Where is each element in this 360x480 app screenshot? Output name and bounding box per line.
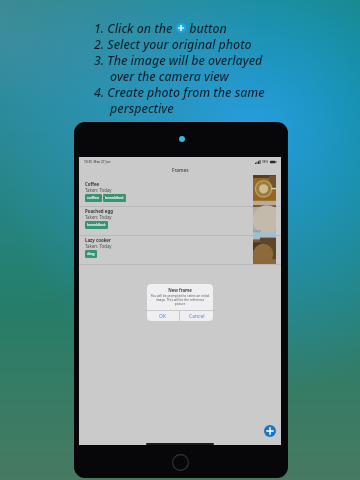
button[interactable]: Lazy cooker: [79, 236, 281, 264]
button[interactable]: OK: [147, 311, 179, 321]
staticText: Lazy cooker: [85, 237, 111, 243]
staticText: coffee: [87, 195, 100, 201]
staticText: breakfast: [105, 195, 124, 201]
staticText: Taken: Today: [85, 187, 112, 193]
staticText: New frame: [147, 287, 213, 293]
staticText: You will be prompted to select an initia…: [147, 294, 213, 306]
button[interactable]: Cancel: [180, 311, 213, 321]
staticText: 4. Create photo from the same: [94, 84, 265, 100]
staticText: button: [186, 20, 227, 36]
button[interactable]: breakfast: [85, 221, 108, 229]
button[interactable]: coffee: [85, 194, 102, 202]
staticText: perspective: [94, 100, 174, 116]
button[interactable]: Poached egg: [79, 207, 281, 235]
staticText: Taken: Today: [85, 243, 112, 249]
staticText: Cancel: [189, 313, 205, 320]
button[interactable]: Coffee: [79, 180, 281, 206]
staticText: Poached egg: [85, 208, 113, 214]
staticText: breakfast: [87, 222, 106, 228]
button[interactable]: breakfast: [103, 194, 126, 202]
staticText: Coffee: [85, 181, 100, 187]
staticText: 3. The image will be overlayed: [94, 52, 263, 68]
staticText: Taken: Today: [85, 214, 112, 220]
staticText: OK: [159, 313, 167, 320]
staticText: dog: [87, 251, 95, 257]
button[interactable]: dog: [85, 250, 97, 258]
staticText: Frames: [172, 167, 189, 173]
staticText: 2. Select your original photo: [94, 36, 252, 52]
staticText: 1. Click on the: [94, 20, 176, 36]
staticText: 10:25 Mon 27 Jun: [84, 160, 111, 164]
button[interactable]: Add new frame: [264, 425, 276, 437]
staticText: over the camera view: [94, 68, 229, 84]
staticText: 98%: [262, 160, 269, 164]
